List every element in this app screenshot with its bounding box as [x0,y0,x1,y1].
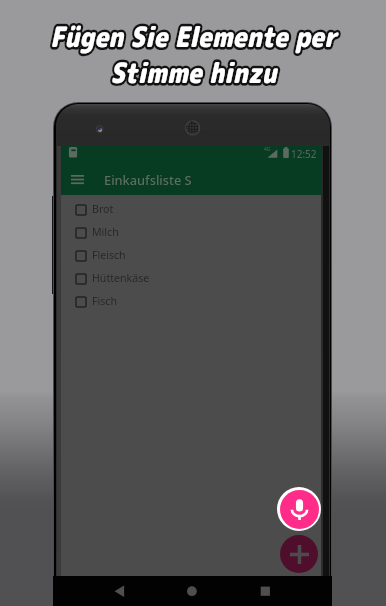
button[interactable]: Add items by voice [280,490,319,529]
button[interactable]: Brot [61,198,321,221]
staticText: Milch [92,225,119,239]
button[interactable]: Add item [280,535,318,573]
staticText: 12:52 [291,147,317,161]
button[interactable]: Fisch [61,290,321,313]
button[interactable]: Milch [61,221,321,244]
staticText: 4G [264,146,271,153]
staticText: Fisch [92,294,117,308]
button[interactable]: Open navigation menu [66,168,88,190]
staticText: Einkaufsliste S [104,171,192,188]
staticText: Fleisch [92,248,126,262]
staticText: Hüttenkäse [92,271,150,285]
button[interactable]: Hüttenkäse [61,267,321,290]
staticText: Brot [92,202,114,216]
button[interactable]: Fleisch [61,244,321,267]
staticText: Fügen Sie Elemente per Stimme hinzu [50,17,337,92]
staticText: Fügen Sie Elemente per Stimme hinzu [50,17,337,92]
